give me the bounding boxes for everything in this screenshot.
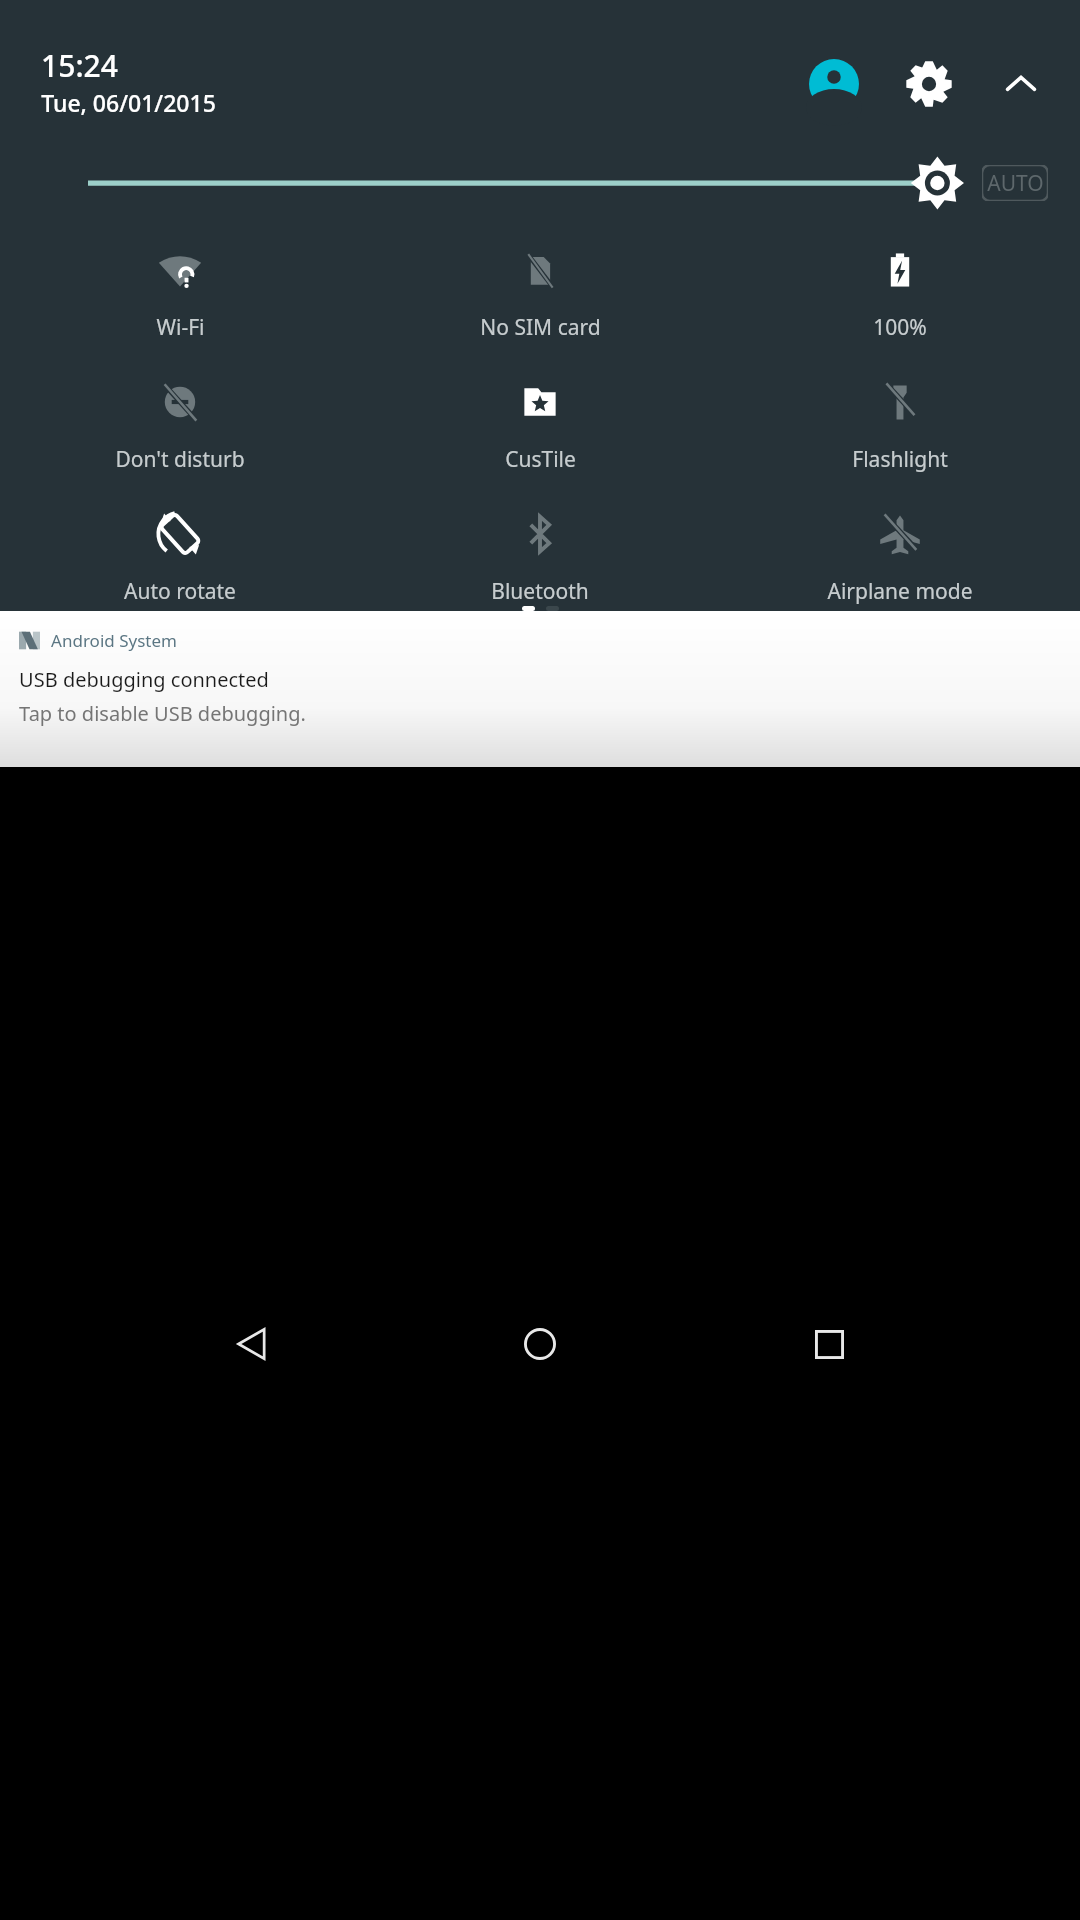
staticText: No SIM card	[480, 313, 601, 342]
button[interactable]: Don't disturb	[0, 376, 360, 474]
button[interactable]: Auto rotate	[0, 508, 360, 606]
button[interactable]: Recent apps	[792, 1307, 866, 1381]
staticText: 15:24	[41, 45, 118, 86]
staticText: CusTile	[505, 445, 576, 474]
button[interactable]: Back	[215, 1307, 289, 1381]
button[interactable]: Brightness	[88, 148, 964, 218]
button[interactable]: Settings	[898, 53, 960, 115]
staticText: Don't disturb	[115, 445, 245, 474]
button[interactable]: No SIM card	[360, 244, 720, 342]
button[interactable]: Airplane mode	[720, 508, 1080, 606]
staticText: AUTO	[987, 169, 1044, 198]
button[interactable]: Flashlight	[720, 376, 1080, 474]
staticText: USB debugging connected	[19, 666, 269, 693]
button[interactable]: CusTile	[360, 376, 720, 474]
button[interactable]: AUTO	[982, 165, 1048, 201]
staticText: Airplane mode	[827, 577, 973, 606]
staticText: 100%	[873, 313, 927, 342]
staticText: Flashlight	[852, 445, 948, 474]
button[interactable]: User	[803, 53, 865, 115]
button[interactable]: Collapse	[992, 55, 1050, 113]
staticText: Auto rotate	[124, 577, 236, 606]
button[interactable]: Wi-Fi	[0, 244, 360, 342]
staticText: Android System	[51, 629, 177, 652]
staticText: Tue, 06/01/2015	[41, 87, 216, 118]
button[interactable]: Bluetooth	[360, 508, 720, 606]
staticText: Wi-Fi	[156, 313, 205, 342]
button[interactable]: Android System	[0, 611, 1080, 767]
button[interactable]: 100%	[720, 244, 1080, 342]
staticText: Tap to disable USB debugging.	[19, 700, 306, 727]
staticText: Bluetooth	[491, 577, 589, 606]
button[interactable]: Home	[503, 1307, 577, 1381]
